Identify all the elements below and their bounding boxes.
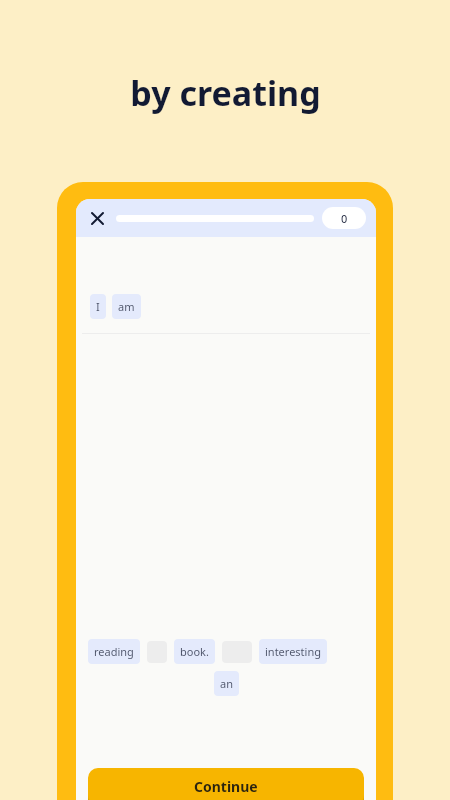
staticText: Continue (194, 777, 258, 796)
staticText: interesting (265, 644, 321, 659)
button[interactable]: book. (174, 639, 215, 664)
staticText: book. (180, 644, 209, 659)
staticText: by creating (130, 70, 321, 116)
staticText: 0 (341, 211, 348, 226)
button[interactable]: reading (88, 639, 140, 664)
button[interactable]: I (90, 294, 106, 319)
staticText: am (118, 299, 135, 314)
button[interactable]: 0 (322, 207, 366, 229)
button[interactable]: interesting (259, 639, 327, 664)
button[interactable]: am (112, 294, 141, 319)
staticText: reading (94, 644, 134, 659)
staticText: I (96, 299, 100, 314)
button[interactable]: Close (86, 207, 108, 229)
button[interactable]: an (214, 671, 239, 696)
button[interactable]: Continue (88, 768, 364, 800)
staticText: an (220, 676, 233, 691)
